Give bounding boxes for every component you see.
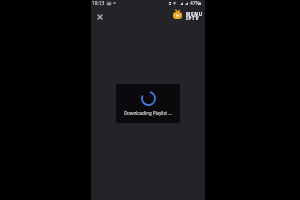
- button[interactable]: Close: [94, 11, 106, 23]
- button[interactable]: Menu IPTV: [172, 9, 189, 19]
- staticText: 47%: [190, 0, 200, 7]
- staticText: 10:13: [92, 0, 105, 7]
- staticText: MENU: [186, 11, 203, 17]
- staticText: Downloading Playlist ...: [116, 110, 180, 116]
- staticText: IPTV: [186, 15, 200, 21]
